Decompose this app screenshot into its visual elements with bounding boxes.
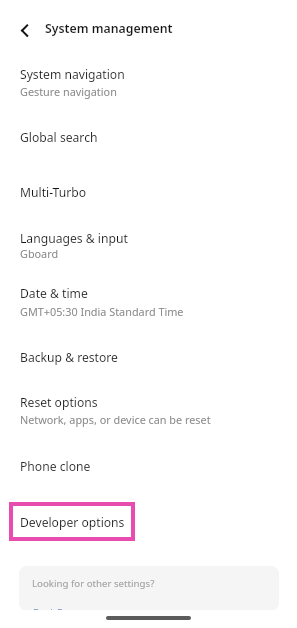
button[interactable]: Back: [8, 14, 40, 46]
staticText: Multi-Turbo: [20, 184, 87, 201]
staticText: GMT+05:30 India Standard Time: [20, 304, 184, 319]
button[interactable]: Multi-Turbo: [0, 158, 297, 210]
staticText: Network, apps, or device can be reset: [20, 412, 211, 427]
staticText: System management: [45, 20, 173, 37]
staticText: Reset: [57, 606, 83, 610]
button[interactable]: System navigation: [0, 56, 297, 108]
button[interactable]: Developer options: [13, 506, 131, 537]
button[interactable]: Looking for other settings?: [19, 566, 279, 610]
button[interactable]: Backup & restore: [0, 326, 297, 374]
button[interactable]: Date & time: [0, 264, 297, 318]
staticText: Date & time: [20, 285, 88, 302]
staticText: Phone clone: [20, 458, 91, 475]
staticText: Looking for other settings?: [32, 577, 155, 590]
staticText: Gboard: [20, 246, 59, 261]
button[interactable]: Languages & input: [0, 210, 297, 264]
staticText: Developer options: [20, 514, 125, 531]
staticText: Device: [33, 606, 63, 610]
button[interactable]: Reset options: [0, 374, 297, 428]
staticText: Backup & restore: [20, 349, 118, 366]
staticText: System navigation: [20, 66, 125, 83]
staticText: Gesture navigation: [20, 84, 117, 99]
button[interactable]: Phone clone: [0, 437, 297, 487]
staticText: Languages & input: [20, 230, 128, 247]
staticText: Reset options: [20, 394, 98, 411]
staticText: Global search: [20, 129, 98, 146]
button[interactable]: Global search: [0, 108, 297, 158]
